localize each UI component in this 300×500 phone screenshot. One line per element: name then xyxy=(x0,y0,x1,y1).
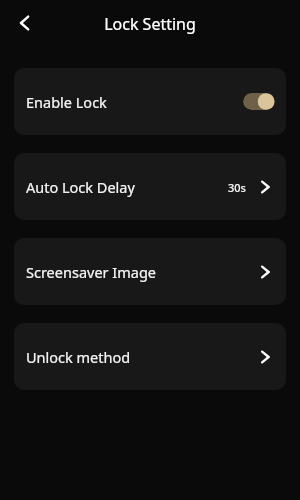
staticText: Lock Setting xyxy=(104,13,196,35)
staticText: Auto Lock Delay xyxy=(26,177,135,197)
button[interactable]: Back xyxy=(8,6,42,40)
button[interactable]: Screensaver Image xyxy=(14,238,286,305)
staticText: Enable Lock xyxy=(26,92,107,112)
staticText: Unlock method xyxy=(26,347,131,367)
staticText: 30s xyxy=(228,180,246,195)
button[interactable]: Unlock method xyxy=(14,323,286,390)
button[interactable]: Auto Lock Delay xyxy=(14,153,286,220)
staticText: Screensaver Image xyxy=(26,262,157,282)
button[interactable]: Enable Lock toggle xyxy=(243,93,275,110)
button[interactable]: Enable Lock xyxy=(14,68,286,135)
